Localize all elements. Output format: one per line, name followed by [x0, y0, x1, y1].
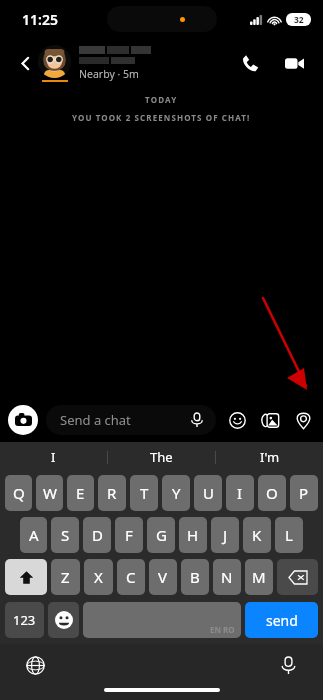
button[interactable]: Voice input: [275, 652, 301, 678]
staticText: M: [252, 567, 266, 587]
button[interactable]: Stickers: [225, 408, 249, 432]
staticText: The: [150, 448, 173, 466]
staticText: S: [61, 525, 70, 545]
staticText: L: [285, 525, 293, 545]
button[interactable]: W: [36, 475, 63, 511]
button[interactable]: N: [213, 559, 241, 595]
button[interactable]: X: [84, 559, 113, 595]
staticText: G: [156, 525, 167, 545]
button[interactable]: T: [130, 475, 158, 511]
staticText: U: [203, 483, 214, 503]
staticText: I: [51, 448, 56, 466]
staticText: O: [266, 483, 278, 503]
button[interactable]: C: [117, 559, 145, 595]
staticText: A: [29, 525, 39, 545]
button[interactable]: Change language: [22, 652, 48, 678]
button[interactable]: R: [98, 475, 126, 511]
button[interactable]: I: [0, 442, 107, 472]
staticText: E: [76, 483, 85, 503]
button[interactable]: Camera: [8, 405, 38, 435]
staticText: I: [237, 483, 243, 503]
staticText: Z: [61, 567, 70, 587]
button[interactable]: Space: [83, 602, 241, 638]
button[interactable]: G: [147, 517, 175, 553]
button[interactable]: Emoji: [48, 602, 79, 638]
staticText: 32: [294, 14, 304, 26]
staticText: V: [158, 567, 168, 587]
staticText: EN RO: [210, 624, 235, 635]
button[interactable]: Location: [291, 408, 315, 432]
button[interactable]: Send a chat: [46, 405, 216, 435]
button[interactable]: send: [245, 602, 318, 638]
staticText: J: [223, 525, 228, 545]
staticText: D: [92, 525, 103, 545]
staticText: T: [140, 483, 149, 503]
staticText: Nearby · 5m: [79, 67, 139, 81]
staticText: C: [126, 567, 136, 587]
button[interactable]: Video call: [279, 48, 309, 78]
staticText: W: [43, 483, 57, 503]
button[interactable]: I: [226, 475, 254, 511]
staticText: 11:25: [22, 10, 58, 29]
staticText: YOU TOOK 2 SCREENSHOTS OF CHAT!: [72, 112, 251, 123]
button[interactable]: The: [108, 442, 215, 472]
button[interactable]: I'm: [216, 442, 323, 472]
staticText: Q: [13, 483, 25, 503]
staticText: Send a chat: [60, 411, 190, 429]
button[interactable]: V: [149, 559, 177, 595]
button[interactable]: A: [20, 517, 47, 553]
staticText: F: [125, 525, 133, 545]
staticText: H: [187, 525, 199, 545]
button[interactable]: 123: [5, 602, 44, 638]
button[interactable]: L: [275, 517, 303, 553]
staticText: K: [252, 525, 262, 545]
button[interactable]: S: [51, 517, 79, 553]
button[interactable]: Call: [235, 48, 265, 78]
staticText: X: [94, 567, 103, 587]
button[interactable]: Shift: [5, 559, 47, 595]
staticText: TODAY: [145, 94, 178, 105]
button[interactable]: K: [243, 517, 271, 553]
staticText: 123: [13, 611, 36, 629]
button[interactable]: M: [245, 559, 273, 595]
button[interactable]: Y: [162, 475, 190, 511]
staticText: send: [266, 611, 298, 630]
button[interactable]: Q: [5, 475, 32, 511]
button[interactable]: J: [211, 517, 239, 553]
button[interactable]: H: [179, 517, 207, 553]
button[interactable]: P: [290, 475, 318, 511]
staticText: I'm: [260, 448, 280, 466]
button[interactable]: B: [181, 559, 209, 595]
staticText: Y: [172, 483, 181, 503]
button[interactable]: E: [67, 475, 94, 511]
button[interactable]: Backspace: [277, 559, 318, 595]
button[interactable]: Z: [51, 559, 80, 595]
staticText: R: [107, 483, 117, 503]
button[interactable]: O: [258, 475, 286, 511]
staticText: P: [299, 483, 309, 503]
staticText: N: [221, 567, 233, 587]
button[interactable]: Nearby · 5m: [38, 45, 151, 82]
button[interactable]: U: [194, 475, 222, 511]
button[interactable]: D: [83, 517, 111, 553]
button[interactable]: Gallery: [258, 408, 282, 432]
button[interactable]: Back: [8, 46, 42, 80]
button[interactable]: F: [115, 517, 143, 553]
staticText: B: [190, 567, 200, 587]
